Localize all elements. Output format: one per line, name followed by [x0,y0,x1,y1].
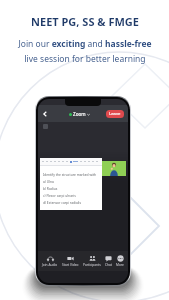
button[interactable]: Start Video [61,255,80,267]
button[interactable]: Back [39,108,50,119]
button[interactable]: Leave [106,110,124,118]
staticText: a) Ulna [43,179,54,183]
staticText: Leave [109,111,121,117]
staticText: live session for better learning [24,53,146,65]
button[interactable]: Join Audio [41,255,59,267]
button[interactable]: Zoom [67,109,92,119]
staticText: Join our exciting and hassle-free [18,38,152,50]
button[interactable]: Chat [104,255,113,267]
staticText: Participants [83,263,101,267]
staticText: c) Flexor carpi ulnaris [43,193,76,197]
staticText: Identify the structure marked with arrow… [43,172,102,176]
staticText: Start Video [62,263,79,267]
staticText: More [116,263,124,267]
button[interactable]: Speaker video [102,161,126,176]
staticText: Chat [105,263,112,267]
staticText: d) Extensor carpi radialis [43,200,82,204]
staticText: Zoom [73,111,86,117]
staticText: Join Audio [42,263,58,267]
button[interactable]: More [115,255,125,267]
button[interactable]: Participants [82,255,102,267]
staticText: b) Radius [43,186,58,190]
staticText: NEET PG, SS & FMGE [31,14,139,29]
button[interactable]: View [43,124,48,129]
